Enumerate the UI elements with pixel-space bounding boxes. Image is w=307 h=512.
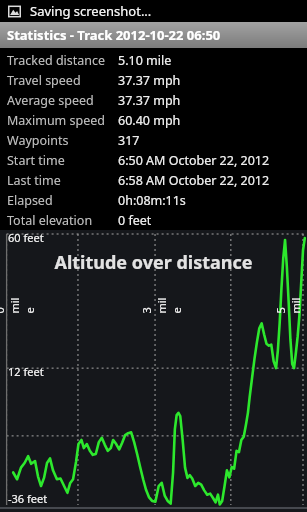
staticText: 0 mile	[0, 293, 36, 313]
staticText: Average speed	[7, 92, 118, 109]
button[interactable]: Tracked distance	[0, 50, 307, 70]
staticText: Elapsed	[7, 192, 118, 209]
button[interactable]: Average speed	[0, 90, 307, 110]
staticText: 60.40 mph	[118, 112, 181, 129]
staticText: 5.10 mile	[118, 52, 172, 69]
staticText: 0 feet	[118, 212, 152, 229]
other: Screenshot saved	[8, 5, 21, 18]
staticText: 6:50 AM October 22, 2012	[118, 152, 270, 169]
button[interactable]: Total elevation	[0, 210, 307, 230]
staticText: 3 mile	[138, 293, 183, 313]
button[interactable]: Waypoints	[0, 130, 307, 150]
staticText: 37.37 mph	[118, 72, 181, 89]
staticText: Saving screenshot...	[30, 2, 152, 20]
staticText: Statistics - Track 2012-10-22 06:50	[7, 26, 221, 44]
staticText: 12 feet	[8, 364, 44, 379]
staticText: 5 mile	[272, 293, 307, 313]
button[interactable]: Travel speed	[0, 70, 307, 90]
button[interactable]: Altitude over distance	[0, 230, 307, 512]
staticText: 317	[118, 132, 140, 149]
staticText: 60 feet	[8, 230, 44, 245]
staticText: Total elevation	[7, 212, 118, 229]
staticText: Start time	[7, 152, 118, 169]
button[interactable]: Maximum speed	[0, 110, 307, 130]
staticText: Maximum speed	[7, 112, 118, 129]
button[interactable]: Elapsed	[0, 190, 307, 210]
staticText: 37.37 mph	[118, 92, 181, 109]
button[interactable]: Statistics - Track 2012-10-22 06:50	[0, 22, 307, 48]
staticText: Tracked distance	[7, 52, 118, 69]
staticText: Travel speed	[7, 72, 118, 89]
staticText: Last time	[7, 172, 118, 189]
button[interactable]: Start time	[0, 150, 307, 170]
staticText: Waypoints	[7, 132, 118, 149]
staticText: 6:58 AM October 22, 2012	[118, 172, 270, 189]
staticText: -36 feet	[8, 491, 48, 506]
staticText: Altitude over distance	[54, 250, 253, 275]
button[interactable]: Last time	[0, 170, 307, 190]
staticText: 0h:08m:11s	[118, 192, 186, 209]
